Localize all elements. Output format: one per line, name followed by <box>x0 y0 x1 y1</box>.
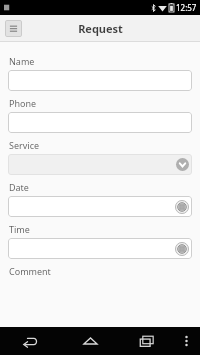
staticText: Request <box>78 21 123 36</box>
button[interactable]: Back <box>0 327 60 355</box>
button[interactable]: Recent apps <box>121 327 173 355</box>
button[interactable] <box>8 112 192 133</box>
button[interactable]: More options <box>173 327 200 355</box>
staticText: Service <box>9 139 40 151</box>
button[interactable]: Home <box>60 327 121 355</box>
button[interactable]: Menu <box>5 20 22 37</box>
other: Pick value <box>175 242 189 256</box>
button[interactable] <box>8 70 192 91</box>
staticText: Date <box>9 181 29 193</box>
staticText: Time <box>9 223 30 235</box>
staticText: Name <box>9 55 35 67</box>
staticText: Phone <box>9 97 37 109</box>
button[interactable]: Pick value <box>8 196 192 217</box>
staticText: 12:57 <box>176 2 197 13</box>
staticText: Comment <box>9 265 51 277</box>
button[interactable]: Pick value <box>8 238 192 259</box>
other: Open dropdown <box>176 158 189 171</box>
other: Pick value <box>175 200 189 214</box>
button[interactable]: Open dropdown <box>8 154 192 175</box>
